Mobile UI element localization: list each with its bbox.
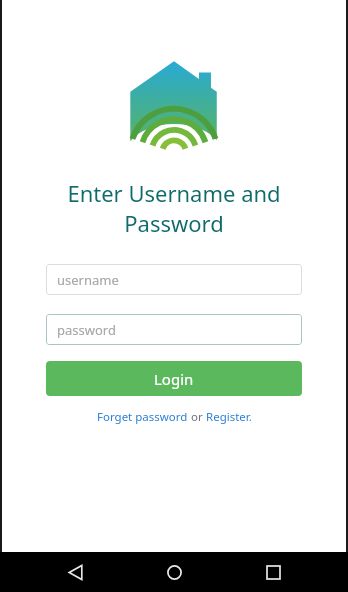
button[interactable]: Forget password — [97, 409, 188, 425]
button[interactable]: Register. — [206, 409, 252, 425]
button[interactable]: username — [46, 264, 302, 295]
staticText: password — [57, 321, 116, 339]
button[interactable]: Back — [51, 552, 99, 592]
button[interactable]: Login — [46, 361, 302, 396]
button[interactable]: password — [46, 314, 302, 345]
staticText: or — [188, 409, 206, 425]
button[interactable]: Recent apps — [249, 552, 297, 592]
staticText: Login — [154, 369, 194, 389]
staticText: Forget password — [97, 409, 188, 425]
staticText: Enter Username and Password — [32, 178, 316, 238]
button[interactable]: Home — [150, 552, 198, 592]
staticText: username — [57, 271, 119, 289]
staticText: Register. — [206, 409, 252, 425]
